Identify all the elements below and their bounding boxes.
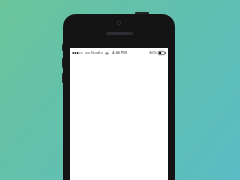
button[interactable]: Volume up (62, 58, 65, 68)
staticText: 4:44 PM (112, 50, 127, 55)
button[interactable]: Power (135, 12, 149, 16)
button[interactable]: Volume down (62, 73, 65, 83)
staticText: ao Studio (85, 50, 103, 55)
staticText: 46% (149, 50, 157, 55)
button[interactable]: Mute switch (62, 44, 65, 51)
